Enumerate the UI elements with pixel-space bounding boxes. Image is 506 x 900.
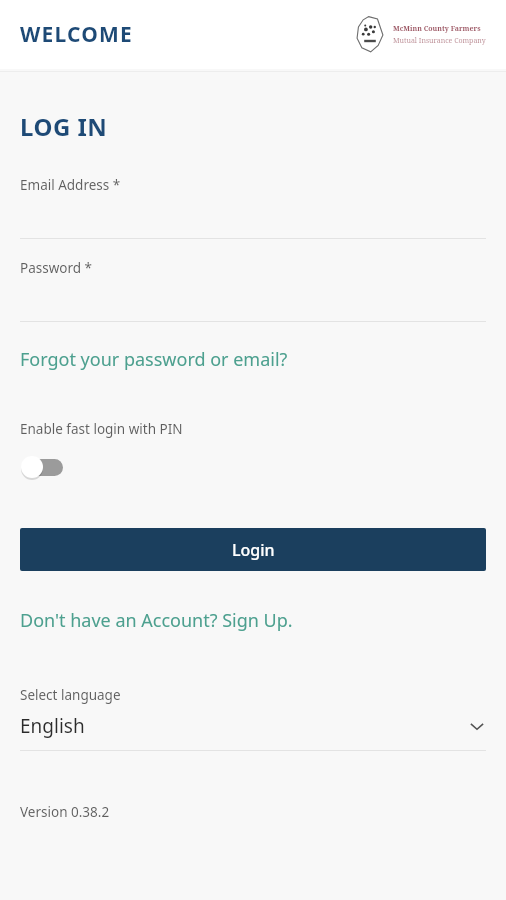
- staticText: Password *: [20, 259, 93, 277]
- staticText: Select language: [20, 686, 121, 704]
- staticText: Mutual Insurance Company: [393, 36, 486, 46]
- button[interactable]: McMinn County Farmers Mutual Insurance C…: [353, 15, 486, 55]
- button[interactable]: Login: [20, 528, 486, 571]
- button[interactable]: Enable fast login with PIN: [20, 452, 72, 482]
- button[interactable]: Email Address *: [20, 176, 486, 239]
- staticText: Version 0.38.2: [20, 803, 110, 821]
- button[interactable]: Password *: [20, 259, 486, 322]
- staticText: WELCOME: [20, 20, 134, 49]
- button[interactable]: Select language: [20, 686, 486, 751]
- staticText: Email Address *: [20, 176, 121, 194]
- staticText: McMinn County Farmers: [393, 24, 481, 34]
- staticText: Login: [232, 539, 275, 561]
- staticText: Forgot your password or email?: [20, 347, 288, 372]
- staticText: English: [20, 713, 468, 739]
- staticText: LOG IN: [20, 110, 108, 143]
- staticText: Don't have an Account? Sign Up.: [20, 608, 293, 633]
- staticText: Enable fast login with PIN: [20, 420, 183, 438]
- button[interactable]: Don't have an Account? Sign Up.: [20, 604, 486, 637]
- button[interactable]: Forgot your password or email?: [20, 343, 486, 376]
